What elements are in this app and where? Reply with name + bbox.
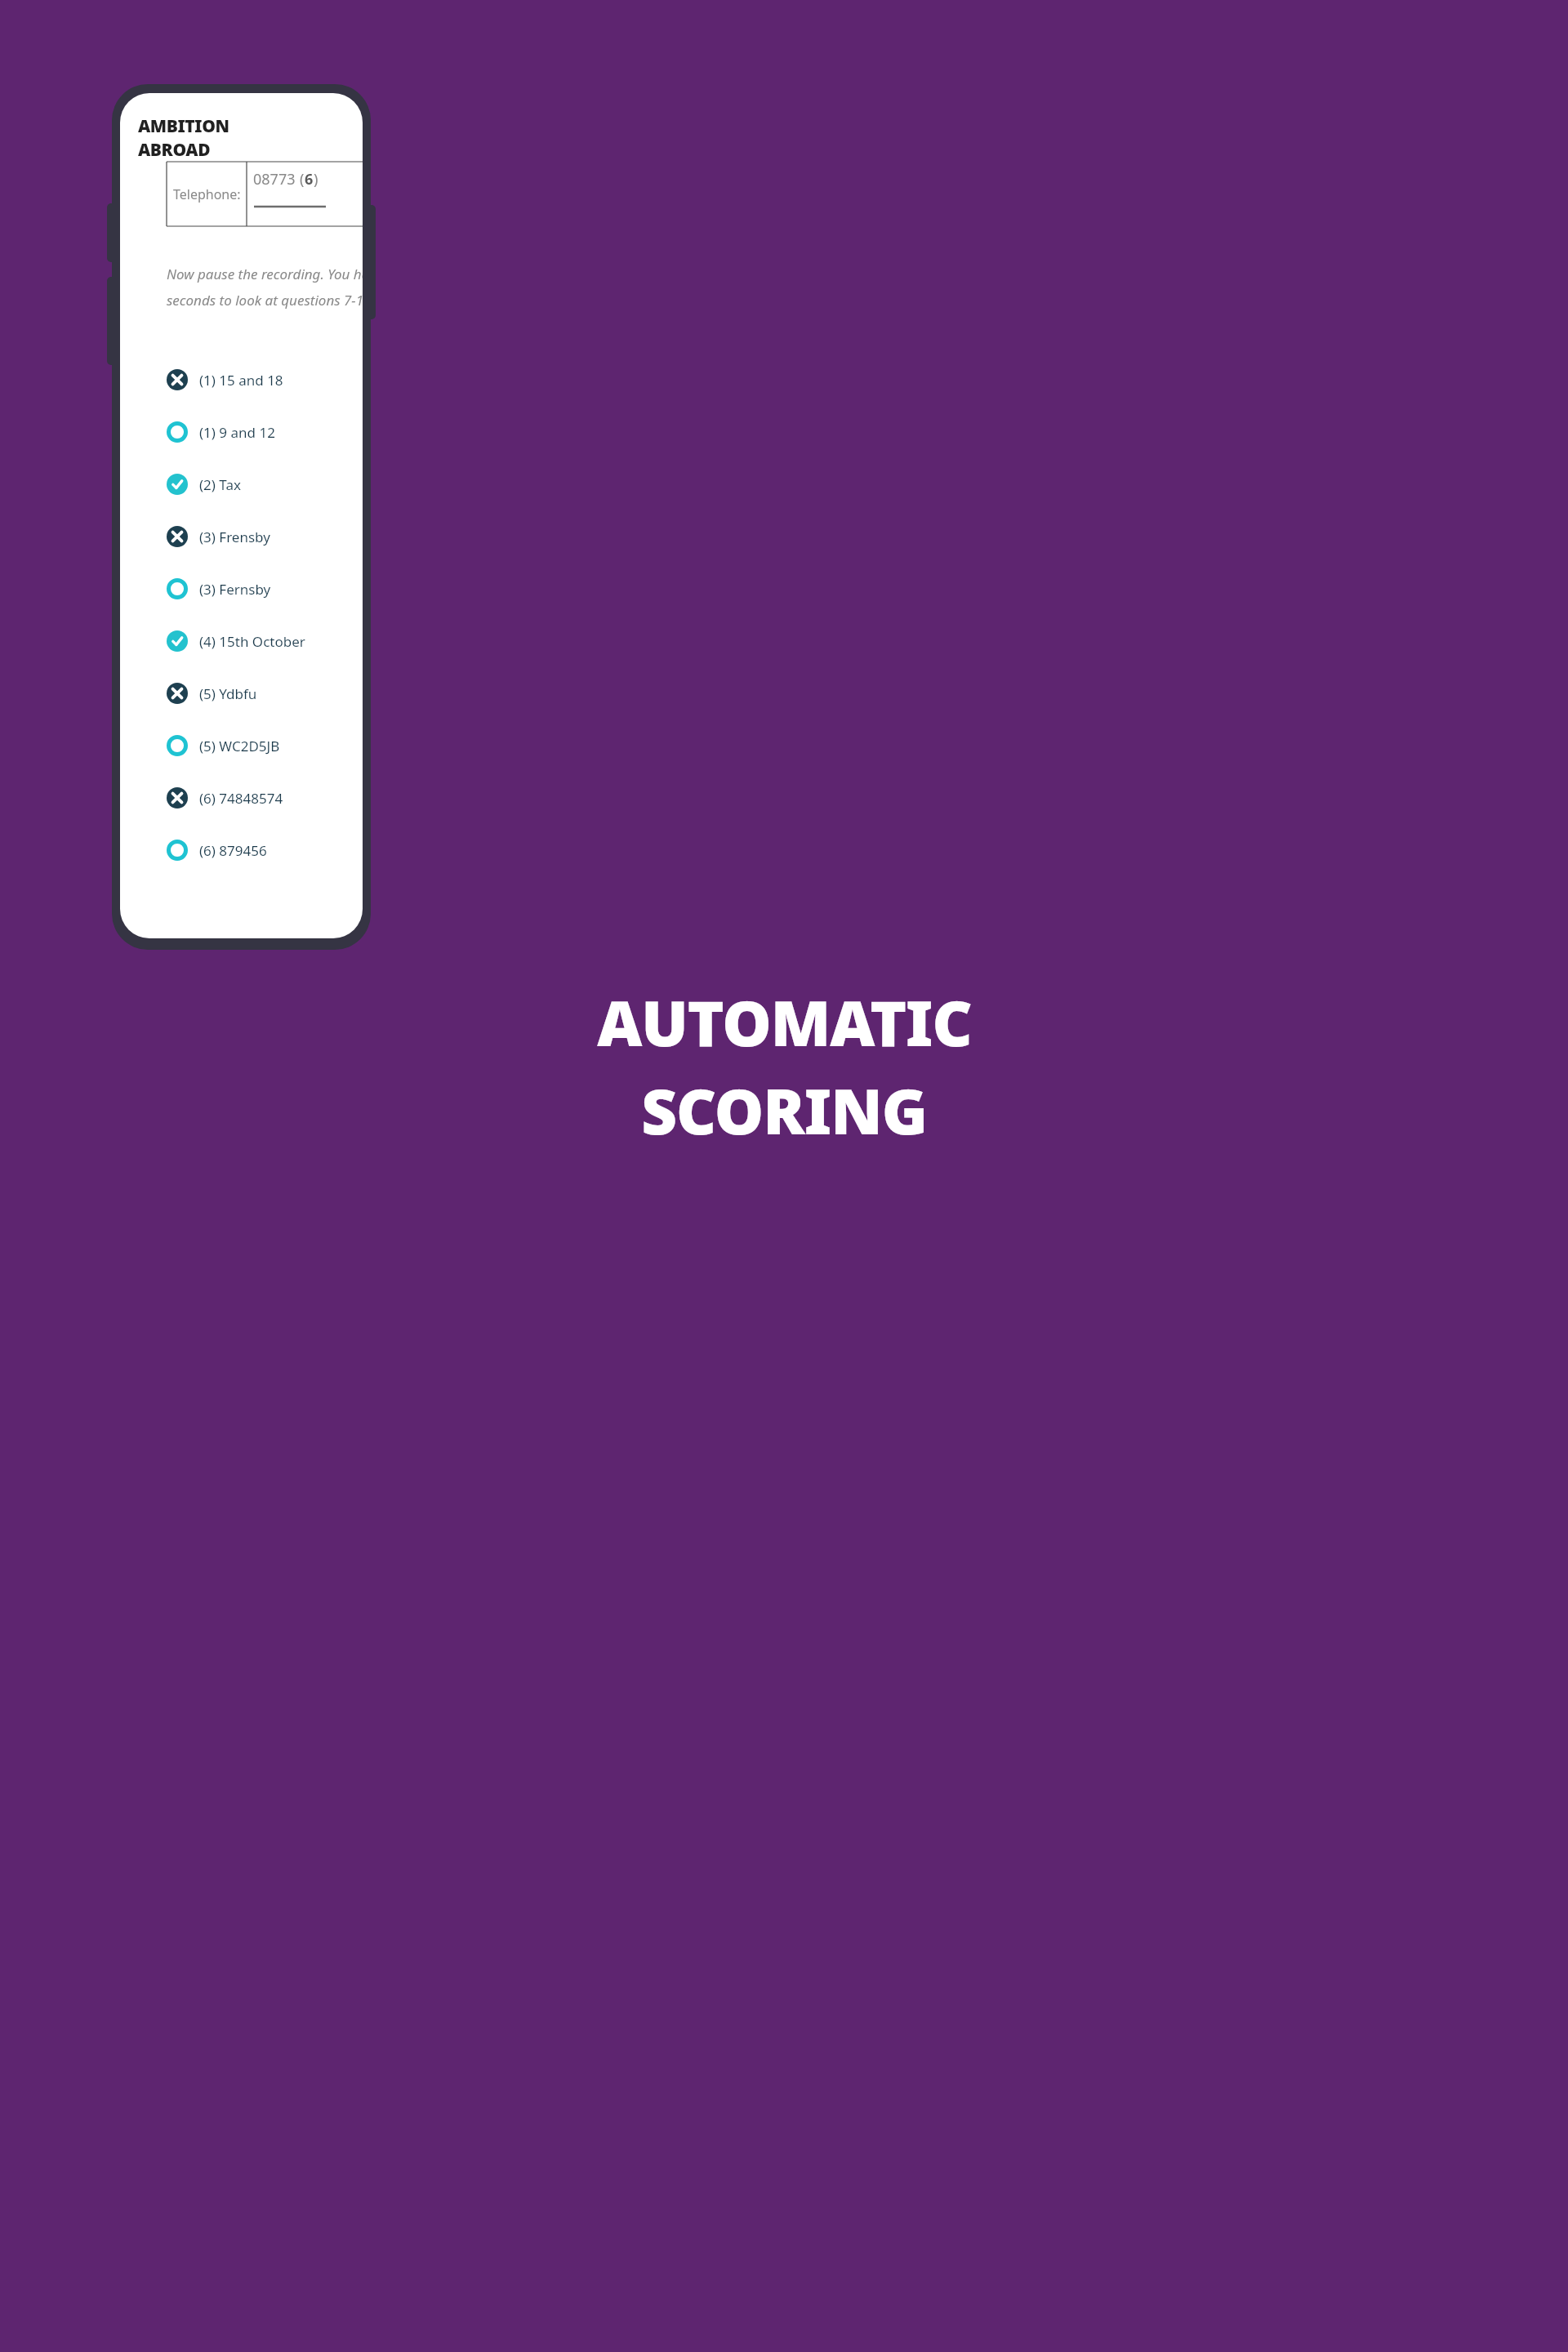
- button[interactable]: Correct answer: [167, 458, 354, 510]
- staticText: SCORING: [641, 1068, 927, 1153]
- staticText: ABROAD: [138, 138, 211, 162]
- staticText: 08773: [253, 169, 300, 189]
- other: Correct answer option: [167, 421, 188, 443]
- button[interactable]: Incorrect answer: [167, 772, 354, 824]
- button[interactable]: Correct answer option: [167, 406, 354, 458]
- other: Incorrect answer: [167, 683, 188, 704]
- button[interactable]: Incorrect answer: [167, 354, 354, 406]
- button[interactable]: Incorrect answer: [167, 667, 354, 719]
- staticText: (3) Frensby: [199, 528, 270, 546]
- staticText: ): [314, 169, 318, 189]
- staticText: Telephone:: [173, 185, 241, 203]
- staticText: (2) Tax: [199, 475, 241, 494]
- other: Correct answer: [167, 630, 188, 652]
- other: Correct answer: [167, 474, 188, 495]
- button[interactable]: Correct answer option: [167, 719, 354, 772]
- staticText: (1) 15 and 18: [199, 371, 283, 390]
- button[interactable]: Correct answer option: [167, 824, 354, 876]
- staticText: (3) Fernsby: [199, 580, 271, 599]
- other: Incorrect answer: [167, 787, 188, 808]
- staticText: (6) 879456: [199, 841, 267, 860]
- other: Correct answer option: [167, 735, 188, 756]
- other: Incorrect answer: [167, 369, 188, 390]
- other: Correct answer option: [167, 840, 188, 861]
- staticText: (6) 74848574: [199, 789, 283, 808]
- button[interactable]: Correct answer option: [167, 563, 354, 615]
- staticText: (: [300, 169, 305, 189]
- button[interactable]: Incorrect answer: [167, 510, 354, 563]
- staticText: AUTOMATIC: [597, 980, 972, 1065]
- staticText: AMBITION: [138, 114, 229, 138]
- other: Incorrect answer: [167, 526, 188, 547]
- staticText: Now pause the recording. You have 30: [167, 265, 363, 283]
- staticText: seconds to look at questions 7-10.: [167, 291, 363, 310]
- staticText: (1) 9 and 12: [199, 423, 275, 442]
- staticText: (5) WC2D5JB: [199, 737, 280, 755]
- button[interactable]: Correct answer: [167, 615, 354, 667]
- staticText: (5) Ydbfu: [199, 684, 257, 703]
- staticText: 6: [305, 169, 314, 189]
- other: Correct answer option: [167, 578, 188, 599]
- staticText: (4) 15th October: [199, 632, 305, 651]
